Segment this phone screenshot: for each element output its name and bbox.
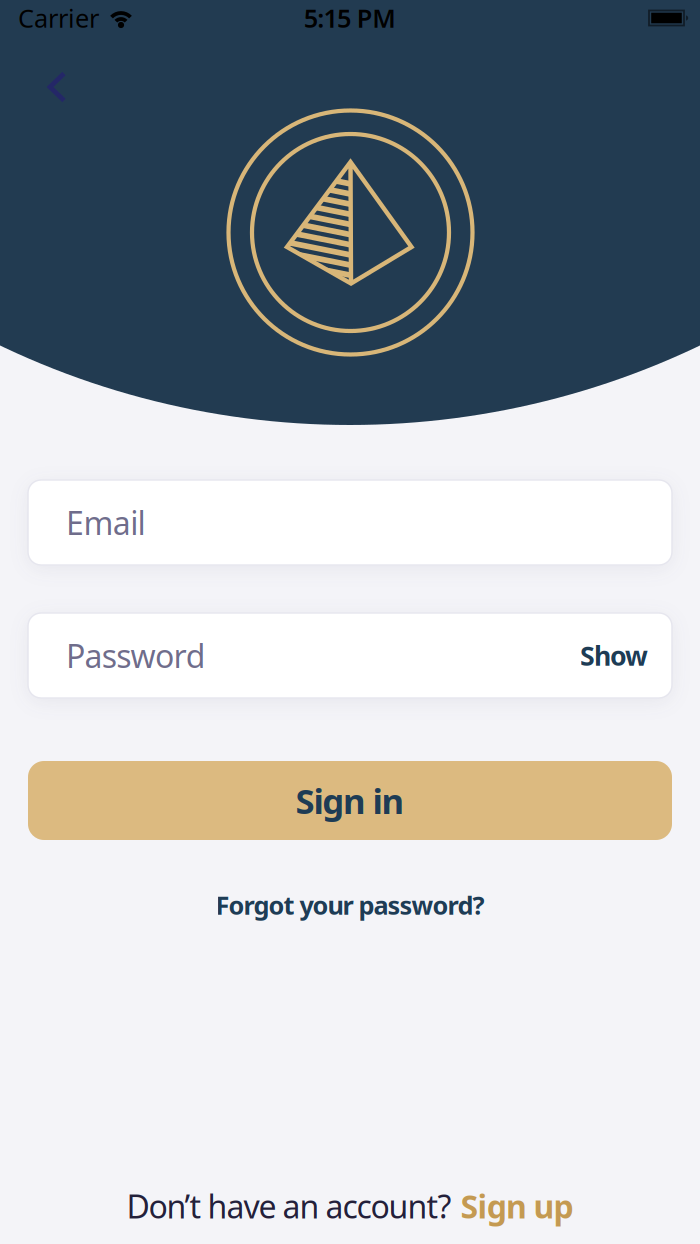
staticText: Email (66, 501, 146, 544)
staticText: Forgot your password? (215, 888, 484, 922)
staticText: Password (66, 634, 206, 677)
button[interactable]: Sign in (28, 761, 672, 840)
staticText: Sign up (460, 1185, 574, 1227)
button[interactable]: Email (28, 480, 672, 565)
button[interactable]: Password (28, 613, 672, 698)
button[interactable]: Forgot your password? (215, 888, 484, 922)
staticText: 5:15 PM (304, 1, 396, 35)
staticText: Show (580, 638, 648, 673)
staticText: Carrier (18, 1, 99, 35)
button[interactable]: Back (33, 64, 78, 109)
staticText: Sign in (296, 777, 404, 823)
button[interactable]: Sign up (460, 1185, 574, 1227)
staticText: Don’t have an account? (126, 1185, 451, 1227)
